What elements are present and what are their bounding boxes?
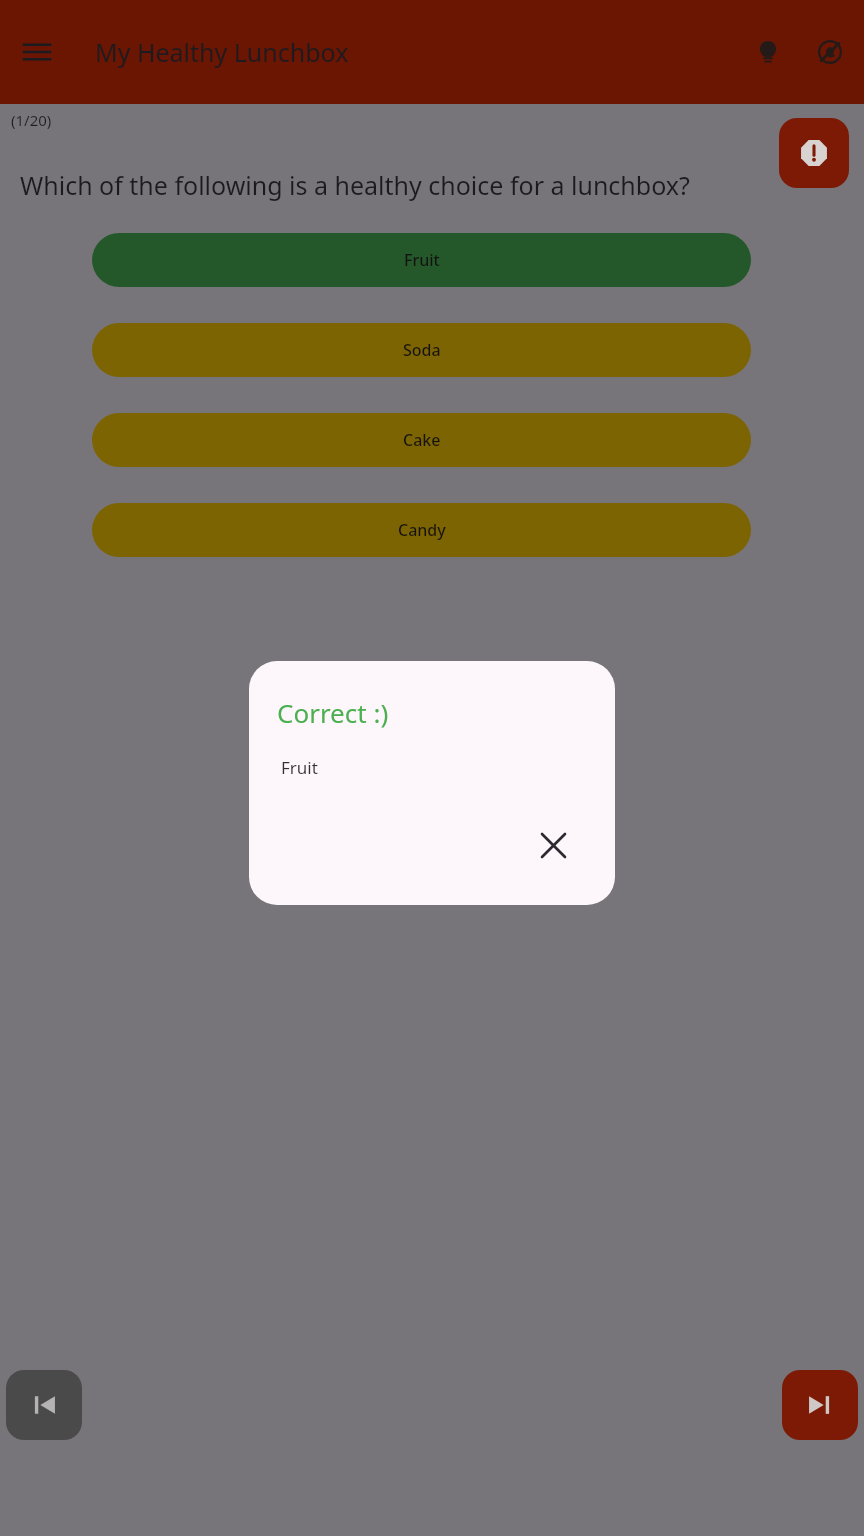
staticText: Fruit bbox=[281, 756, 318, 779]
staticText: Correct :) bbox=[277, 695, 389, 730]
staticText: (1/20) bbox=[11, 110, 52, 130]
button[interactable]: Close bbox=[529, 821, 577, 869]
staticText: Fruit bbox=[404, 249, 440, 271]
button[interactable]: Open navigation menu bbox=[10, 25, 64, 79]
button[interactable]: Soda bbox=[92, 323, 751, 377]
staticText: Cake bbox=[403, 429, 441, 451]
button[interactable]: Offline bbox=[804, 26, 856, 78]
button[interactable]: Hint bbox=[742, 26, 794, 78]
staticText: Candy bbox=[398, 519, 446, 541]
button[interactable]: Cake bbox=[92, 413, 751, 467]
button[interactable]: Report a problem bbox=[779, 118, 849, 188]
button[interactable]: Candy bbox=[92, 503, 751, 557]
button[interactable]: Fruit bbox=[92, 233, 751, 287]
staticText: My Healthy Lunchbox bbox=[95, 35, 349, 69]
button[interactable]: Previous question bbox=[6, 1370, 82, 1440]
staticText: Which of the following is a healthy choi… bbox=[20, 168, 800, 202]
staticText: Soda bbox=[403, 339, 441, 361]
button[interactable]: Next question bbox=[782, 1370, 858, 1440]
